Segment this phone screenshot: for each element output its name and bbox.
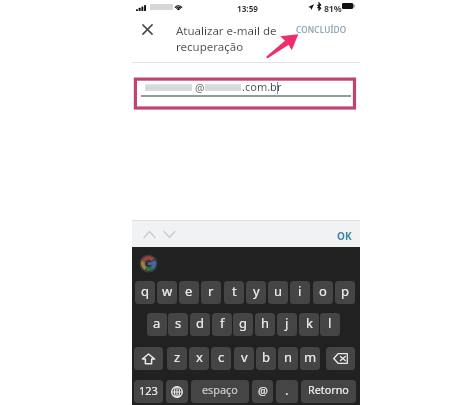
button[interactable]: z	[167, 347, 187, 370]
staticText: d	[196, 314, 204, 332]
button[interactable]: n	[278, 347, 298, 370]
button[interactable]: f	[212, 313, 232, 336]
button[interactable]: o	[313, 281, 333, 304]
staticText: z	[174, 348, 181, 366]
button[interactable]: j	[277, 313, 297, 336]
button[interactable]: h	[255, 313, 275, 336]
button[interactable]: m	[300, 347, 320, 370]
button[interactable]: w	[157, 281, 177, 304]
button[interactable]: v	[234, 347, 254, 370]
button[interactable]: g	[233, 313, 253, 336]
button[interactable]: d	[190, 313, 210, 336]
staticText: espaço	[202, 382, 238, 397]
staticText: r	[208, 282, 214, 300]
staticText: s	[175, 314, 182, 332]
staticText: j	[285, 314, 289, 332]
staticText: q	[141, 282, 149, 300]
button[interactable]: @	[252, 380, 273, 403]
button[interactable]: p	[335, 281, 355, 304]
button[interactable]: Idioma	[166, 380, 188, 403]
button[interactable]: u	[268, 281, 288, 304]
staticText: @	[195, 81, 205, 95]
button[interactable]: b	[256, 347, 276, 370]
staticText: u	[274, 282, 283, 300]
staticText: g	[239, 314, 247, 332]
staticText: 13:59	[237, 3, 259, 14]
button[interactable]: t	[224, 281, 244, 304]
button[interactable]: 123	[134, 380, 163, 403]
button[interactable]: .	[276, 380, 298, 403]
staticText: Atualizar e-mail de recuperação	[176, 23, 281, 54]
staticText: 123	[139, 383, 158, 398]
staticText: o	[319, 282, 327, 300]
button[interactable]: Shift	[134, 347, 163, 370]
button[interactable]: Apagar	[326, 347, 355, 370]
staticText: i	[298, 282, 302, 300]
button[interactable]: Fechar	[138, 20, 156, 38]
staticText: y	[253, 282, 260, 300]
staticText: OK	[337, 229, 352, 243]
staticText: t	[232, 282, 237, 300]
staticText: a	[153, 314, 161, 332]
staticText: .	[285, 381, 289, 399]
button[interactable]: OK	[335, 227, 354, 245]
button[interactable]: a	[147, 313, 167, 336]
button[interactable]: e	[179, 281, 199, 304]
staticText: Retorno	[308, 382, 349, 397]
staticText: f	[220, 314, 225, 332]
button[interactable]: q	[135, 281, 155, 304]
button[interactable]: c	[211, 347, 231, 370]
staticText: .com.br	[242, 79, 282, 94]
button[interactable]: Campo anterior	[142, 228, 157, 241]
staticText: 81%	[324, 3, 342, 15]
button[interactable]: CONCLUÍDO	[294, 23, 349, 36]
staticText: l	[328, 314, 332, 332]
button[interactable]: Retorno	[301, 380, 356, 403]
staticText: n	[284, 348, 293, 366]
staticText: h	[261, 314, 270, 332]
button[interactable]: y	[246, 281, 266, 304]
staticText: v	[241, 348, 248, 366]
staticText: e	[185, 282, 193, 300]
button[interactable]: s	[168, 313, 188, 336]
button[interactable]: Próximo campo	[162, 228, 177, 241]
button[interactable]: r	[201, 281, 221, 304]
button[interactable]: k	[299, 313, 319, 336]
staticText: @	[258, 383, 268, 398]
staticText: CONCLUÍDO	[296, 24, 347, 35]
button[interactable]: l	[320, 313, 340, 336]
staticText: k	[306, 314, 313, 332]
button[interactable]: i	[290, 281, 310, 304]
staticText: b	[262, 348, 270, 366]
staticText: c	[218, 348, 225, 366]
staticText: x	[196, 348, 203, 366]
staticText: p	[341, 282, 349, 300]
button[interactable]: espaço	[191, 380, 249, 403]
staticText: m	[304, 348, 317, 366]
button[interactable]: x	[189, 347, 209, 370]
staticText: w	[162, 282, 173, 300]
